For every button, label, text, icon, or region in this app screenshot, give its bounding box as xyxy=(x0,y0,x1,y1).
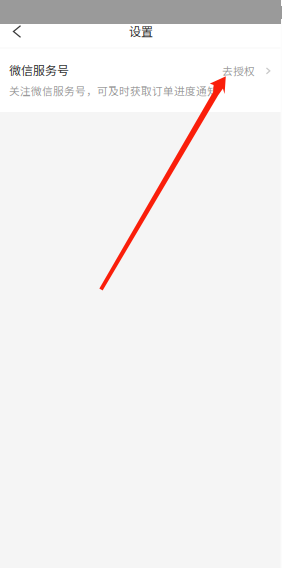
staticText: 关注微信服务号，可及时获取订单进度通知 xyxy=(9,83,218,98)
staticText: 微信服务号 xyxy=(9,61,69,78)
button[interactable]: 微信服务号 xyxy=(0,48,282,112)
staticText: 去授权 xyxy=(222,63,255,78)
staticText: 设置 xyxy=(129,22,153,40)
button[interactable]: Back xyxy=(0,18,36,44)
